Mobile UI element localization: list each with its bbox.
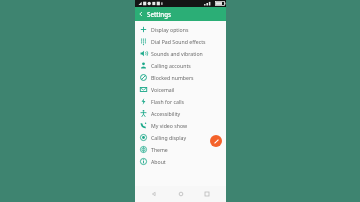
staticText: Accessibility [151, 110, 223, 117]
button[interactable]: Theme [135, 143, 226, 155]
button[interactable]: Calling accounts [135, 59, 226, 71]
button[interactable]: Back [135, 7, 147, 21]
button[interactable]: Dial Pad Sound effects [135, 35, 226, 47]
button[interactable]: Back [147, 187, 161, 201]
staticText: Blocked numbers [151, 74, 223, 81]
staticText: Settings [147, 10, 172, 18]
staticText: Dial Pad Sound effects [151, 38, 223, 45]
button[interactable]: Calling display [135, 131, 226, 143]
staticText: Theme [151, 146, 223, 153]
staticText: About [151, 158, 223, 165]
button[interactable]: Recent apps [200, 187, 214, 201]
button[interactable]: Display options [135, 23, 226, 35]
button[interactable]: Voicemail [135, 83, 226, 95]
staticText: My video show [151, 122, 223, 129]
staticText: Voicemail [151, 86, 223, 93]
button[interactable]: Sounds and vibration [135, 47, 226, 59]
button[interactable]: My video show [135, 119, 226, 131]
staticText: Flash for calls [151, 98, 223, 105]
button[interactable]: Flash for calls [135, 95, 226, 107]
button[interactable]: Home [174, 187, 188, 201]
staticText: Display options [151, 26, 223, 33]
staticText: Calling accounts [151, 62, 223, 69]
button[interactable]: Edit [210, 135, 222, 147]
button[interactable]: Blocked numbers [135, 71, 226, 83]
staticText: Calling display [151, 134, 223, 141]
button[interactable]: Accessibility [135, 107, 226, 119]
button[interactable]: About [135, 155, 226, 167]
staticText: Sounds and vibration [151, 50, 223, 57]
